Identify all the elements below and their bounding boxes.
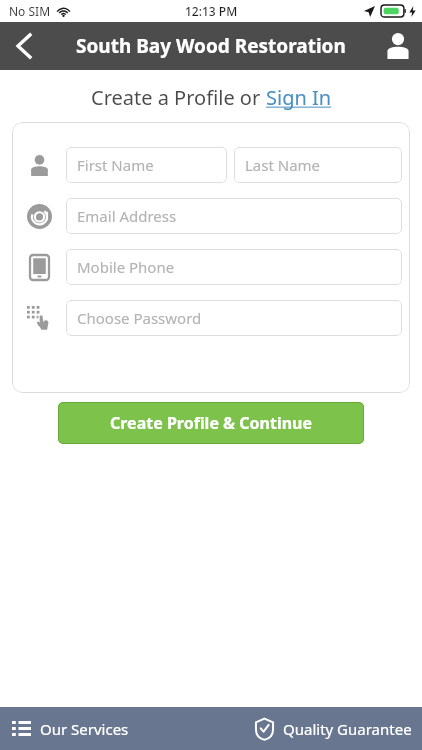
- button[interactable]: First Name: [66, 147, 227, 183]
- button[interactable]: Choose Password: [66, 300, 402, 336]
- button[interactable]: Our Services: [0, 707, 211, 750]
- button[interactable]: Account: [374, 22, 422, 70]
- staticText: South Bay Wood Restoration: [76, 33, 346, 59]
- staticText: Email Address: [77, 206, 177, 226]
- staticText: 12:13 PM: [185, 3, 238, 19]
- staticText: Quality Guarantee: [283, 719, 412, 739]
- button[interactable]: Sign In: [266, 84, 332, 111]
- button[interactable]: Mobile Phone: [66, 249, 402, 285]
- staticText: Create a Profile or: [91, 84, 266, 111]
- staticText: Sign In: [266, 84, 332, 111]
- staticText: First Name: [77, 155, 154, 175]
- button[interactable]: Last Name: [234, 147, 402, 183]
- staticText: Last Name: [245, 155, 321, 175]
- staticText: Choose Password: [77, 308, 202, 328]
- button[interactable]: Create Profile & Continue: [58, 402, 364, 444]
- staticText: Mobile Phone: [77, 257, 175, 277]
- staticText: Our Services: [40, 719, 129, 739]
- button[interactable]: Back: [0, 22, 48, 70]
- staticText: Create Profile & Continue: [110, 412, 313, 434]
- button[interactable]: Email Address: [66, 198, 402, 234]
- button[interactable]: Quality Guarantee: [211, 707, 422, 750]
- staticText: No SIM: [9, 3, 51, 19]
